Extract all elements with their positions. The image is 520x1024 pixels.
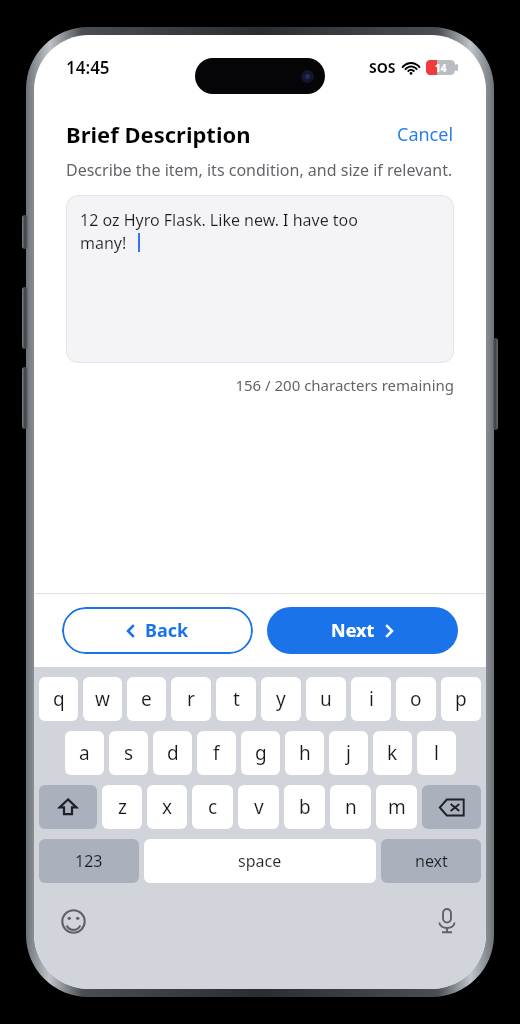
button[interactable]: d: [153, 731, 192, 775]
button[interactable]: a: [65, 731, 104, 775]
staticText: 14:45: [66, 56, 110, 79]
staticText: p: [455, 686, 467, 712]
button[interactable]: p: [441, 677, 481, 721]
button[interactable]: Next: [267, 607, 458, 654]
staticText: c: [208, 794, 218, 820]
button[interactable]: Shift: [39, 785, 97, 829]
button[interactable]: i: [351, 677, 391, 721]
staticText: space: [238, 850, 282, 872]
button[interactable]: e: [127, 677, 166, 721]
staticText: Cancel: [397, 122, 454, 147]
staticText: y: [276, 686, 286, 712]
staticText: e: [141, 686, 152, 712]
staticText: 12 oz Hyro Flask. Like new. I have too m…: [80, 209, 358, 254]
button[interactable]: m: [376, 785, 417, 829]
button[interactable]: 12 oz Hyro Flask. Like new. I have too m…: [66, 195, 454, 363]
staticText: Brief Description: [66, 119, 251, 149]
staticText: x: [162, 794, 173, 820]
staticText: n: [345, 794, 357, 820]
staticText: l: [434, 740, 439, 766]
staticText: m: [388, 794, 406, 820]
staticText: f: [213, 740, 220, 766]
button[interactable]: space: [144, 839, 376, 883]
button[interactable]: next: [381, 839, 481, 883]
button[interactable]: Cancel: [397, 122, 454, 147]
staticText: Next: [331, 618, 375, 643]
button[interactable]: Backspace: [422, 785, 481, 829]
staticText: s: [124, 740, 134, 766]
button[interactable]: c: [192, 785, 233, 829]
button[interactable]: n: [330, 785, 371, 829]
button[interactable]: b: [284, 785, 325, 829]
staticText: SOS: [369, 58, 396, 77]
button[interactable]: y: [261, 677, 301, 721]
staticText: v: [254, 794, 264, 820]
button[interactable]: Emoji: [56, 904, 90, 938]
staticText: o: [410, 686, 422, 712]
button[interactable]: s: [109, 731, 148, 775]
staticText: 156 / 200 characters remaining: [66, 375, 454, 395]
staticText: a: [79, 740, 90, 766]
button[interactable]: z: [102, 785, 142, 829]
staticText: h: [299, 740, 311, 766]
staticText: Back: [145, 618, 189, 643]
button[interactable]: l: [417, 731, 456, 775]
staticText: d: [167, 740, 179, 766]
button[interactable]: x: [147, 785, 187, 829]
button[interactable]: u: [306, 677, 346, 721]
staticText: Describe the item, its condition, and si…: [66, 159, 453, 181]
button[interactable]: Back: [62, 607, 253, 654]
button[interactable]: q: [39, 677, 78, 721]
staticText: t: [233, 686, 240, 712]
staticText: r: [187, 686, 195, 712]
button[interactable]: k: [373, 731, 412, 775]
button[interactable]: f: [197, 731, 236, 775]
button[interactable]: Voice input: [430, 904, 464, 938]
staticText: u: [320, 686, 332, 712]
button[interactable]: r: [171, 677, 211, 721]
staticText: z: [118, 794, 127, 820]
staticText: i: [369, 686, 374, 712]
button[interactable]: 123: [39, 839, 139, 883]
staticText: q: [53, 686, 65, 712]
button[interactable]: w: [83, 677, 122, 721]
button[interactable]: t: [216, 677, 256, 721]
button[interactable]: v: [238, 785, 279, 829]
staticText: 123: [75, 850, 103, 872]
button[interactable]: h: [285, 731, 324, 775]
staticText: 14: [435, 61, 447, 75]
button[interactable]: g: [241, 731, 280, 775]
button[interactable]: o: [396, 677, 436, 721]
staticText: g: [255, 740, 267, 766]
button[interactable]: j: [329, 731, 368, 775]
staticText: j: [346, 740, 351, 766]
staticText: next: [415, 850, 448, 872]
staticText: w: [95, 686, 110, 712]
staticText: k: [387, 740, 398, 766]
staticText: b: [299, 794, 311, 820]
